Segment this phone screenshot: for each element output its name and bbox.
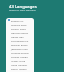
staticText: Dutch Nederl	[11, 67, 27, 70]
button[interactable]: Dutch Nederl	[6, 66, 34, 70]
button[interactable]: Arabic Alara	[6, 58, 34, 62]
staticText: 43 Languages	[9, 4, 37, 10]
staticText: Japanese Niho	[11, 47, 28, 50]
button[interactable]: French Franc	[6, 26, 34, 30]
staticText: French Franc	[11, 27, 27, 30]
staticText: Italian Itali	[11, 35, 24, 38]
button[interactable]: Chinese Zhong	[6, 50, 34, 54]
button[interactable]: Portuguese Po	[6, 38, 34, 42]
button[interactable]: Hindi Hindust	[6, 62, 34, 66]
button[interactable]: Spanish Espa	[6, 22, 34, 26]
staticText: Chinese Zhong	[11, 51, 29, 54]
staticText: Select to start learning	[9, 8, 36, 11]
button[interactable]: English US	[6, 18, 34, 22]
staticText: Arabic Alara	[11, 59, 26, 62]
staticText: Hindi Hindust	[11, 63, 28, 66]
staticText: German Deuts	[11, 31, 29, 34]
button[interactable]: Russian Russk	[6, 42, 34, 46]
staticText: Portuguese Po	[11, 39, 29, 42]
button[interactable]: Italian Itali	[6, 34, 34, 38]
button[interactable]: Korean Hangu	[6, 54, 34, 58]
button[interactable]: Japanese Niho	[6, 46, 34, 50]
staticText: Korean Hangu	[11, 55, 28, 58]
button[interactable]: German Deuts	[6, 30, 34, 34]
staticText: Spanish Espa	[11, 23, 27, 26]
staticText: English US	[11, 19, 24, 22]
staticText: Russian Russk	[11, 43, 28, 46]
